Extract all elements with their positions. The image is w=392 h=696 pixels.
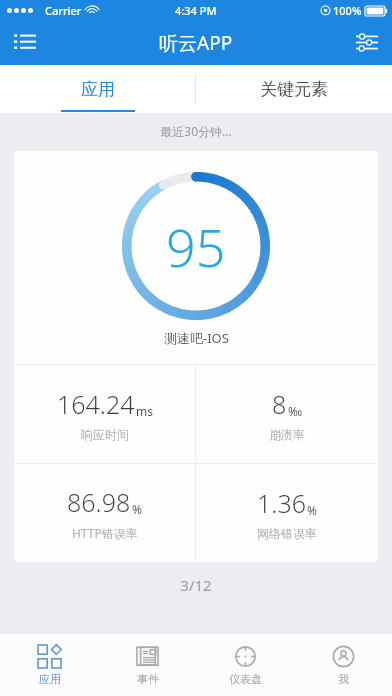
button[interactable]: 86.98	[14, 464, 195, 562]
staticText: HTTP错误率	[72, 525, 138, 541]
staticText: ‰	[288, 403, 303, 419]
staticText: 86.98	[67, 485, 131, 519]
button[interactable]: 我	[294, 634, 392, 696]
staticText: %	[307, 502, 317, 518]
staticText: 测速吧-IOS	[164, 329, 229, 347]
button[interactable]: 事件	[98, 634, 196, 696]
staticText: ms	[136, 403, 153, 419]
button[interactable]: 1.36	[196, 464, 378, 562]
button[interactable]: 8	[196, 365, 378, 463]
staticText: 仪表盘	[229, 672, 262, 686]
staticText: 应用	[81, 79, 115, 100]
staticText: 关键元素	[260, 79, 328, 100]
staticText: 4:34 PM	[175, 3, 217, 18]
staticText: 100%	[333, 3, 362, 18]
staticText: 应用	[39, 672, 61, 686]
button[interactable]: 164.24	[14, 365, 195, 463]
staticText: 事件	[137, 672, 159, 686]
staticText: 崩溃率	[269, 427, 305, 442]
staticText: 95	[166, 211, 226, 282]
staticText: %	[132, 501, 142, 517]
staticText: 3/12	[0, 575, 392, 595]
button[interactable]: 应用	[0, 634, 98, 696]
staticText: 8	[272, 387, 287, 421]
staticText: 听云APP	[159, 30, 233, 56]
staticText: 网络错误率	[257, 526, 317, 541]
staticText: 164.24	[57, 387, 135, 421]
staticText: 1.36	[257, 486, 306, 520]
button[interactable]: Settings	[342, 20, 392, 65]
staticText: 最近30分钟...	[0, 123, 392, 139]
button[interactable]: Menu	[0, 20, 50, 65]
staticText: 响应时间	[81, 427, 129, 442]
staticText: 我	[338, 672, 349, 686]
button[interactable]: 仪表盘	[196, 634, 294, 696]
staticText: Carrier	[45, 3, 82, 18]
button[interactable]: 关键元素	[196, 65, 392, 113]
button[interactable]: 应用	[0, 65, 195, 113]
